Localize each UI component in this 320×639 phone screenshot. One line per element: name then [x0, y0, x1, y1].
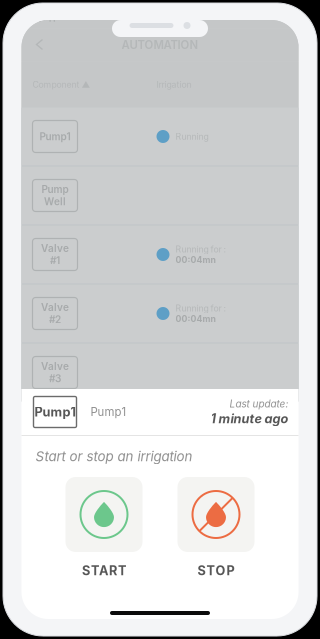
- staticText: 00:04mn: [175, 254, 215, 265]
- staticText: #2: [49, 313, 61, 326]
- staticText: Pump: [41, 183, 68, 195]
- staticText: Well: [44, 195, 66, 208]
- staticText: Irrigation: [156, 79, 191, 90]
- button[interactable]: Back: [21, 33, 51, 56]
- staticText: Component ▲: [32, 79, 90, 90]
- staticText: 1 minute ago: [210, 411, 288, 426]
- staticText: Running for :: [175, 244, 225, 254]
- staticText: 00:04mn: [175, 313, 215, 324]
- staticText: Last update:: [229, 398, 288, 410]
- staticText: #3: [49, 372, 61, 385]
- staticText: 9:41: [36, 12, 55, 24]
- staticText: START: [82, 563, 126, 578]
- staticText: Running for :: [175, 303, 225, 313]
- staticText: Pump1: [34, 404, 75, 420]
- staticText: Running: [175, 131, 208, 142]
- staticText: AUTOMATION: [121, 38, 198, 52]
- staticText: #1: [50, 254, 60, 267]
- button[interactable]: STOP: [177, 477, 254, 578]
- staticText: Start or stop an irrigation: [35, 448, 192, 464]
- staticText: Pump1: [39, 130, 70, 143]
- staticText: STOP: [197, 563, 234, 578]
- staticText: Valve: [41, 360, 69, 372]
- button[interactable]: START: [65, 477, 142, 578]
- staticText: Valve: [41, 301, 69, 313]
- staticText: Valve: [41, 242, 69, 254]
- staticText: Pump1: [90, 405, 126, 419]
- staticText: ▪▪▪: [269, 12, 284, 24]
